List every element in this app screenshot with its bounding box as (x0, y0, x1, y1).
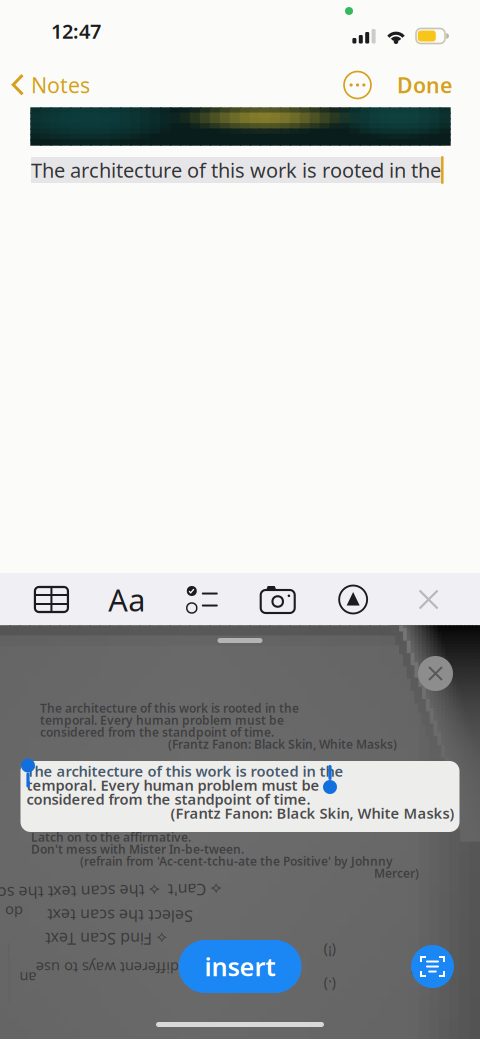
staticText: temporal. Every human problem must be (40, 712, 284, 728)
staticText: considered from the standpoint of time. (40, 724, 274, 740)
staticText: ⟡ Find Scan Text (45, 928, 167, 950)
staticText: The architecture of this work is rooted … (40, 700, 299, 716)
staticText: Done (397, 71, 452, 99)
button[interactable]: Checklist (178, 573, 226, 625)
staticText: temporal. Every human problem must be (26, 775, 319, 795)
staticText: do (5, 902, 23, 922)
button[interactable]: Notes (0, 64, 98, 106)
button[interactable]: Scan text (411, 945, 454, 988)
staticText: (!) (324, 942, 336, 962)
staticText: (Frantz Fanon: Black Skin, White Masks) (168, 736, 397, 752)
staticText: Mercer) (374, 865, 419, 881)
button[interactable]: insert (178, 940, 301, 993)
staticText: considered from the standpoint of time. (26, 789, 310, 809)
staticText: insert (204, 950, 275, 983)
staticText: (Frantz Fanon: Black Skin, White Masks) (170, 803, 454, 823)
staticText: Don't mess with Mister In-be-tween. (31, 841, 244, 857)
staticText: the or different ways to use (36, 958, 224, 978)
staticText: Notes (31, 71, 90, 99)
button[interactable]: More options (344, 71, 371, 98)
staticText: Latch on to the affirmative. (31, 829, 191, 845)
staticText: an (19, 968, 36, 988)
staticText: Aa (108, 579, 145, 620)
button[interactable]: Camera (254, 573, 302, 625)
button[interactable]: Close scanner (418, 656, 453, 691)
button[interactable]: Markup (329, 573, 377, 625)
staticText: (.) (324, 976, 336, 996)
staticText: The architecture of this work is rooted … (26, 761, 343, 781)
button[interactable]: Insert table (27, 573, 75, 625)
staticText: to use (411, 963, 453, 983)
button[interactable]: Text format (103, 573, 151, 625)
staticText: ⟡ Can't ⟡ the scan text the scan text (0, 881, 221, 903)
staticText: (refrain from 'Ac-cent-tchu-ate the Posi… (80, 853, 393, 869)
staticText: Select the scan text (47, 905, 193, 927)
staticText: 12:47 (51, 18, 101, 44)
staticText: The architecture of this work is rooted … (31, 157, 441, 183)
button[interactable]: Dismiss keyboard (405, 573, 453, 625)
button[interactable]: Done (371, 64, 480, 106)
